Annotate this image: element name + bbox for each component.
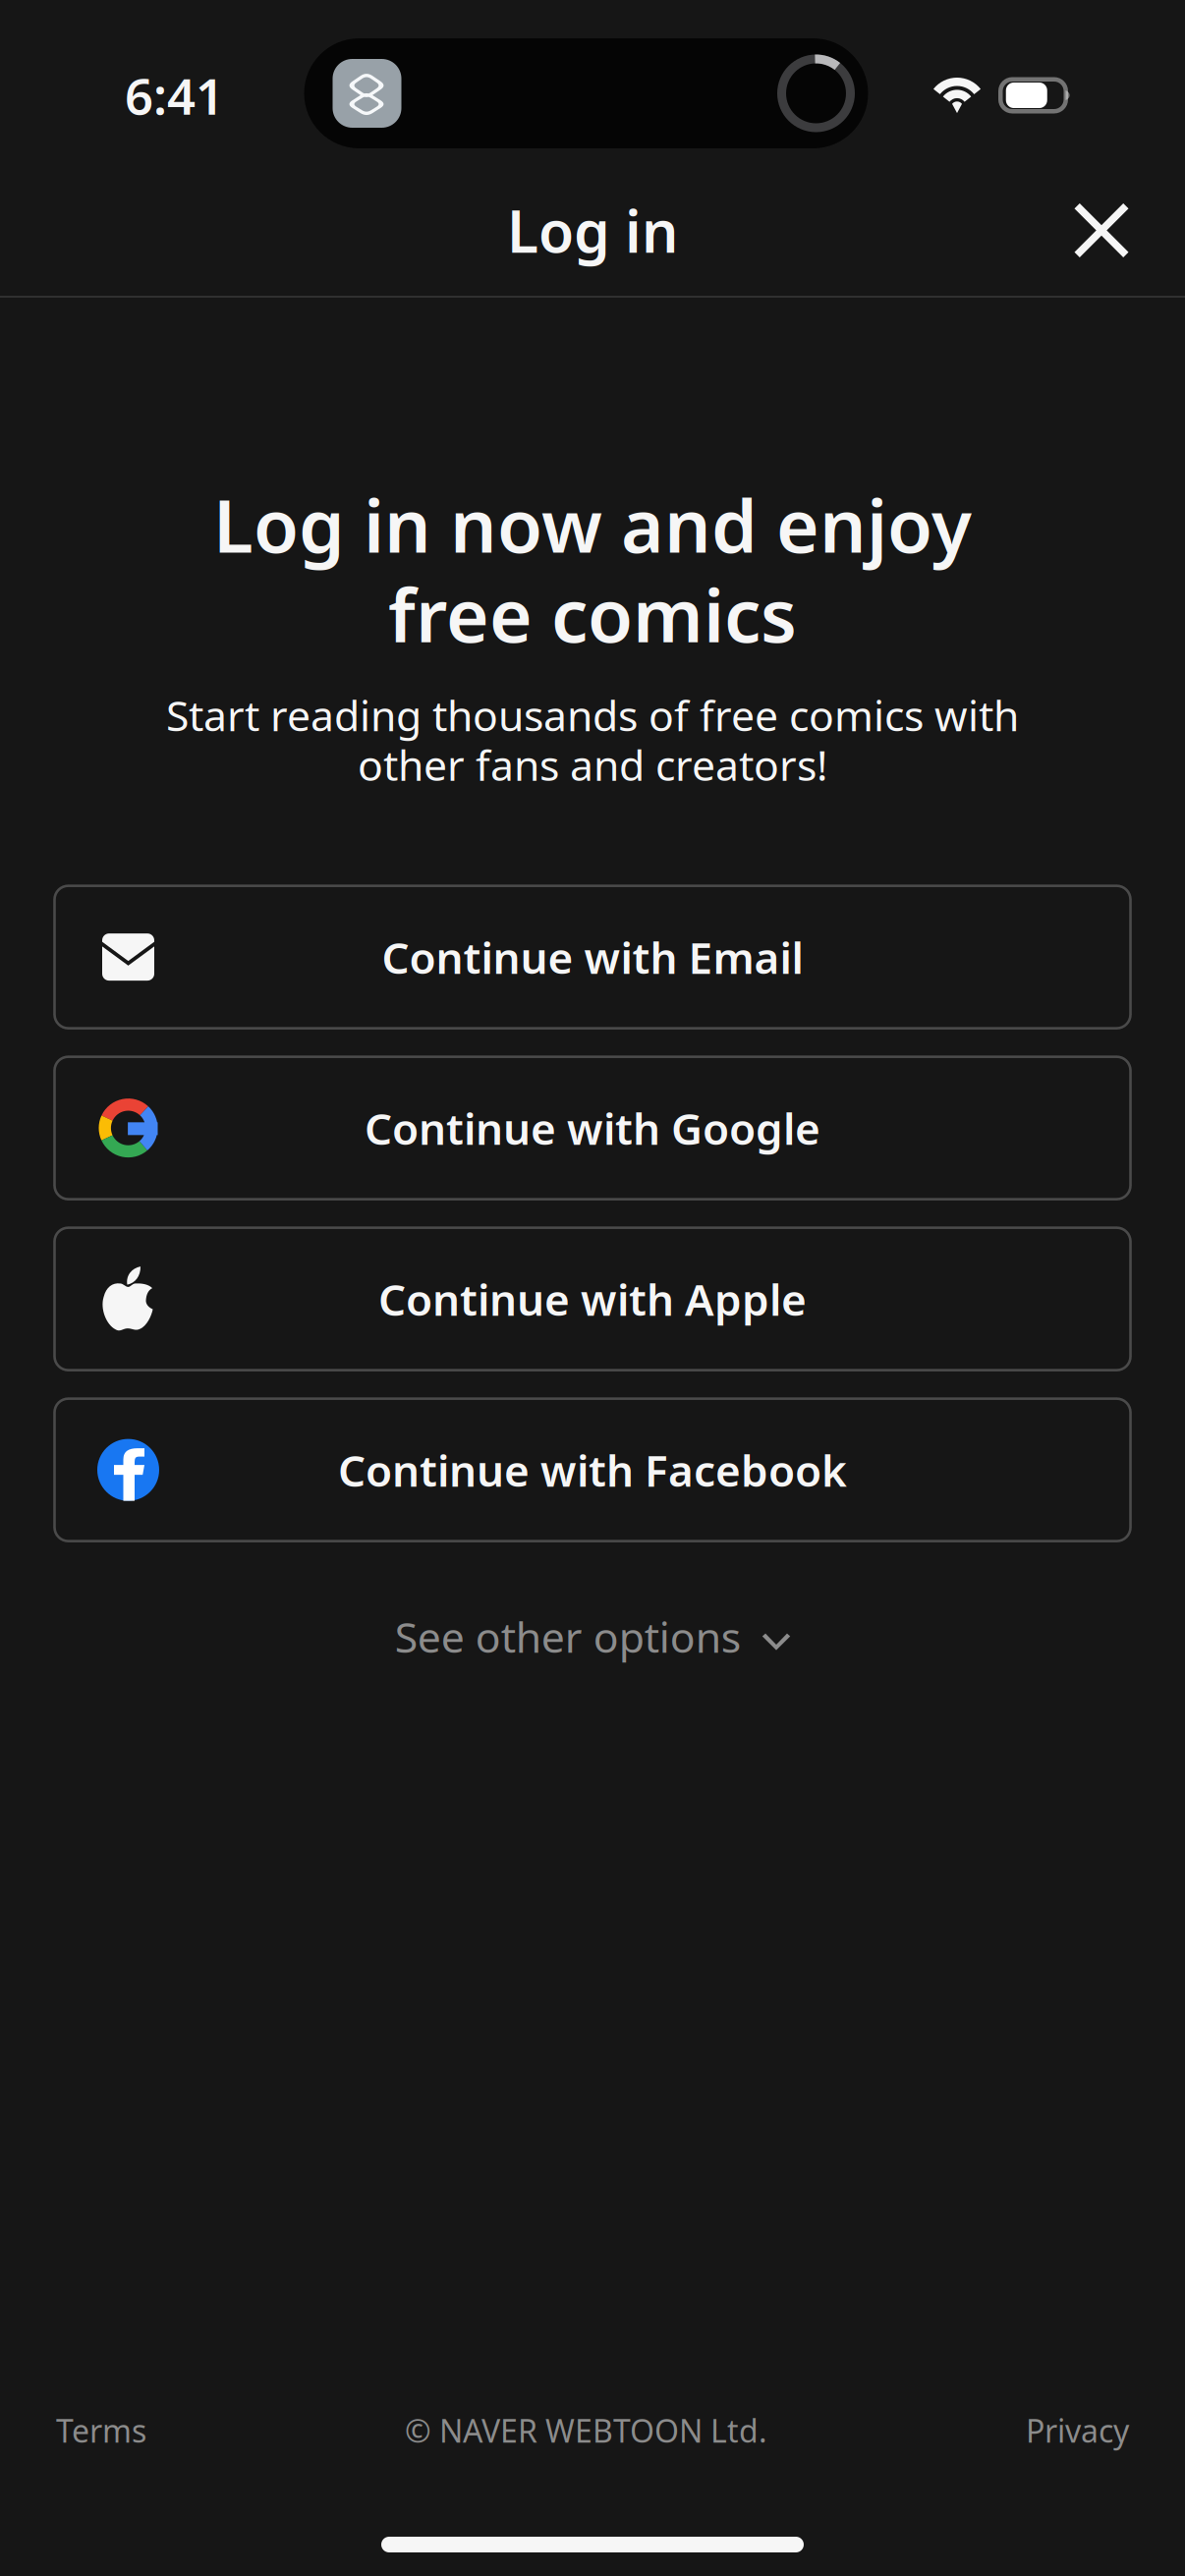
button[interactable]: See other options bbox=[395, 1597, 790, 1676]
button[interactable]: Close bbox=[1046, 175, 1157, 285]
button[interactable]: Continue with Google bbox=[55, 1057, 1130, 1199]
staticText: Privacy bbox=[1026, 2409, 1129, 2451]
staticText: Continue with Facebook bbox=[338, 1441, 847, 1499]
staticText: © NAVER WEBTOON Ltd. bbox=[405, 2409, 767, 2451]
staticText: Continue with Apple bbox=[378, 1270, 807, 1328]
staticText: See other options bbox=[395, 1609, 741, 1664]
staticText: other fans and creators! bbox=[358, 737, 827, 793]
button[interactable]: Continue with Facebook bbox=[55, 1399, 1130, 1541]
button[interactable]: Continue with Apple bbox=[55, 1228, 1130, 1370]
staticText: free comics bbox=[388, 565, 797, 663]
staticText: Start reading thousands of free comics w… bbox=[166, 687, 1019, 743]
staticText: 6:41 bbox=[125, 62, 224, 128]
staticText: Log in now and enjoy bbox=[213, 476, 972, 573]
staticText: Continue with Email bbox=[382, 928, 803, 986]
button[interactable]: Terms bbox=[56, 2409, 146, 2451]
staticText: Terms bbox=[56, 2409, 146, 2451]
button[interactable]: Privacy bbox=[1026, 2409, 1129, 2451]
staticText: Continue with Google bbox=[365, 1099, 820, 1157]
button[interactable]: Continue with Email bbox=[55, 886, 1130, 1028]
staticText: Log in bbox=[507, 192, 678, 269]
